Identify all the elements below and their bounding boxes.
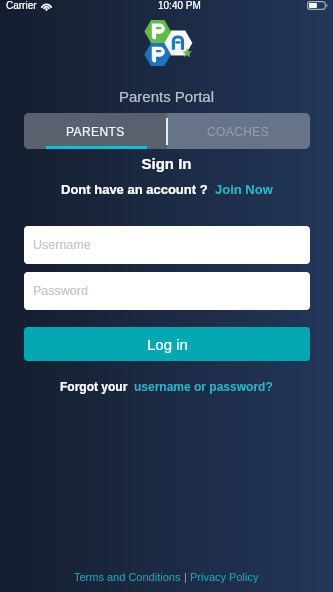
button[interactable]: Terms and Conditions	[74, 571, 181, 583]
staticText: 10:40 PM	[158, 0, 201, 11]
button[interactable]: Password	[24, 272, 310, 310]
staticText: Log in	[147, 336, 188, 353]
staticText: Dont have an account ?	[61, 182, 208, 197]
other: Battery	[307, 1, 328, 10]
button[interactable]: COACHES	[167, 113, 310, 149]
staticText: Carrier	[6, 0, 37, 11]
staticText: Password	[33, 284, 88, 298]
staticText: username or password?	[134, 380, 273, 393]
other: Parents Portal logo	[144, 18, 191, 68]
staticText: PARENTS	[66, 125, 125, 138]
staticText: Join Now	[215, 182, 273, 197]
button[interactable]: Privacy Policy	[190, 571, 259, 583]
button[interactable]: username or password?	[134, 380, 273, 393]
button[interactable]: Join Now	[215, 182, 273, 197]
staticText: |	[181, 571, 190, 583]
button[interactable]: Log in	[24, 327, 310, 361]
staticText: Username	[33, 238, 91, 252]
staticText: Parents Portal	[0, 88, 333, 105]
button[interactable]: Username	[24, 226, 310, 264]
staticText: Sign In	[0, 155, 333, 172]
staticText: Privacy Policy	[190, 571, 259, 583]
button[interactable]: PARENTS	[24, 113, 167, 149]
staticText: Terms and Conditions	[74, 571, 181, 583]
other: Wifi signal	[41, 1, 52, 10]
staticText: COACHES	[207, 125, 270, 138]
staticText: Forgot your	[60, 380, 128, 393]
